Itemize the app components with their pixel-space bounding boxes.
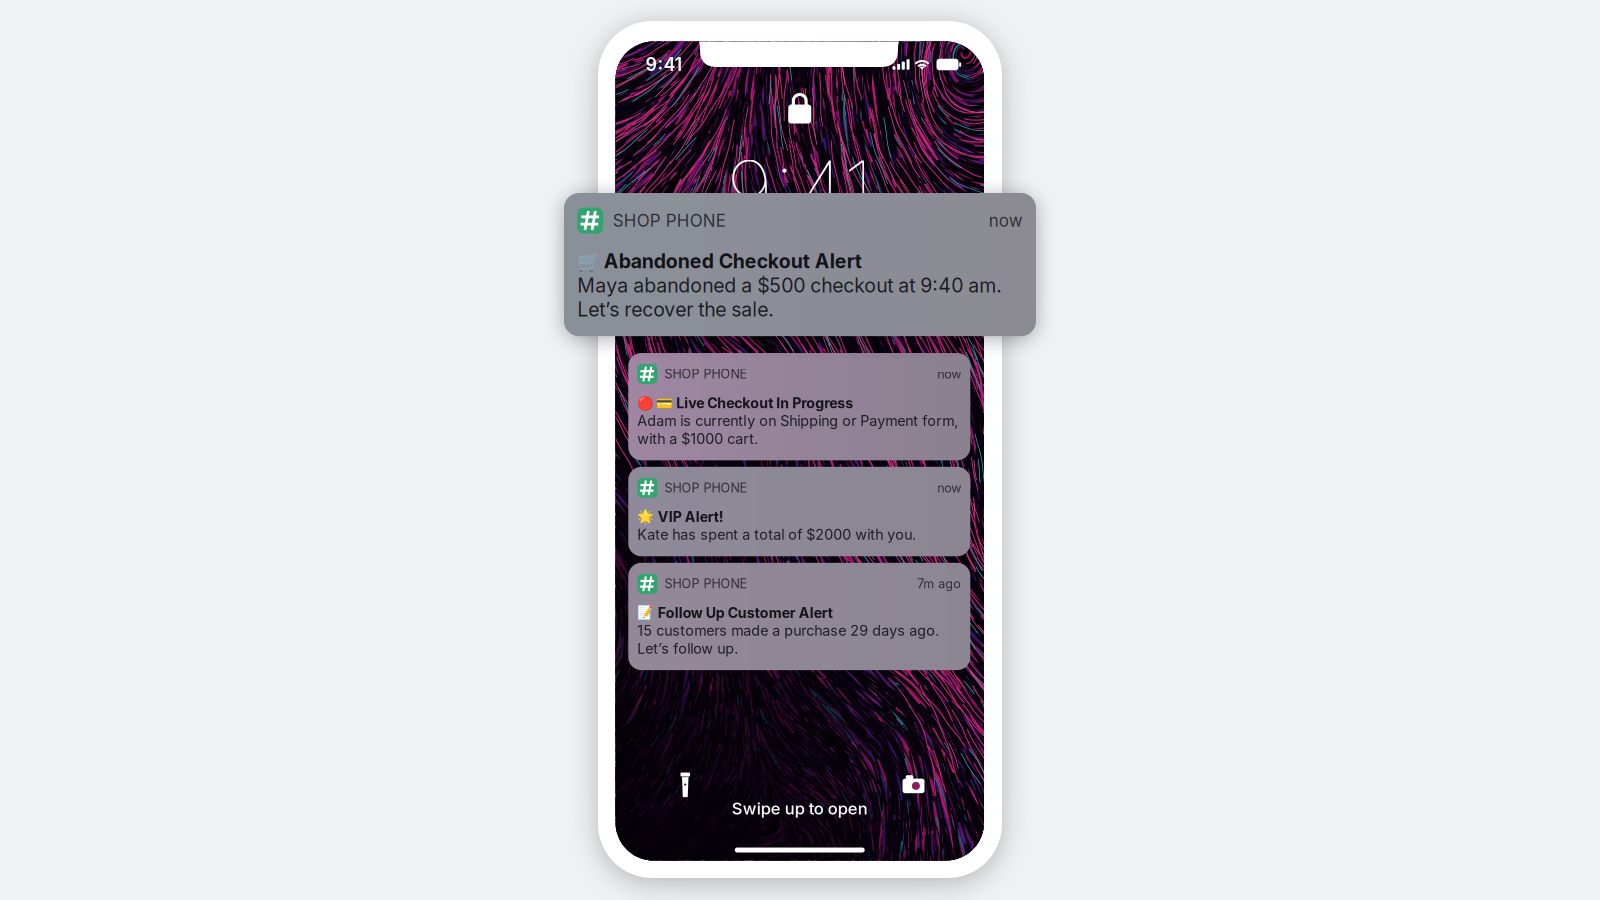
- staticText: Live Checkout In Progress: [676, 394, 853, 412]
- staticText: 9:41: [726, 140, 873, 240]
- staticText: Let’s recover the sale.: [577, 298, 774, 321]
- button[interactable]: SHOP PHONE: [628, 467, 970, 556]
- staticText: VIP Alert!: [658, 508, 724, 525]
- staticText: Abandoned Checkout Alert: [604, 249, 862, 273]
- staticText: 🛒: [577, 250, 600, 272]
- staticText: SHOP PHONE: [665, 366, 748, 382]
- staticText: now: [937, 480, 961, 495]
- staticText: 💳: [656, 395, 673, 411]
- staticText: 7m ago: [917, 576, 961, 591]
- button[interactable]: SHOP PHONE: [628, 563, 970, 670]
- staticText: Kate has spent a total of $2000 with you…: [637, 526, 916, 543]
- staticText: SHOP PHONE: [613, 210, 726, 231]
- staticText: SHOP PHONE: [665, 480, 748, 495]
- staticText: 🌟: [637, 509, 654, 525]
- staticText: Follow Up Customer Alert: [658, 604, 833, 621]
- staticText: 15 customers made a purchase 29 days ago…: [637, 622, 939, 639]
- button[interactable]: Camera: [902, 773, 924, 791]
- button[interactable]: SHOP PHONE: [628, 353, 970, 460]
- staticText: now: [937, 366, 961, 382]
- button[interactable]: Flashlight: [680, 772, 690, 797]
- staticText: SHOP PHONE: [665, 576, 748, 591]
- staticText: Adam is currently on Shipping or Payment…: [637, 412, 958, 429]
- staticText: now: [989, 210, 1023, 231]
- staticText: with a $1000 cart.: [637, 430, 758, 447]
- staticText: 📝: [637, 605, 654, 621]
- button[interactable]: SHOP PHONE: [564, 193, 1036, 336]
- staticText: Swipe up to open: [732, 798, 868, 818]
- staticText: 9:41: [645, 54, 682, 75]
- staticText: 🔴: [637, 395, 654, 411]
- staticText: Maya abandoned a $500 checkout at 9:40 a…: [577, 274, 1002, 297]
- staticText: Let’s follow up.: [637, 640, 738, 657]
